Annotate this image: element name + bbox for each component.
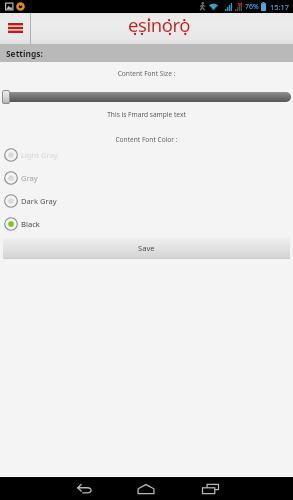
staticText: This is Fmard sample text [0,110,293,119]
staticText: esinoro [128,12,191,37]
staticText: Black [21,219,40,229]
button[interactable]: Dark Gray [0,189,293,212]
staticText: 76% [245,2,259,12]
staticText: 15:17 [270,2,289,12]
button[interactable]: Content font size slider [0,87,293,103]
staticText: Content Font Color : [0,135,293,144]
button[interactable]: Black [0,212,293,235]
button[interactable]: Home [124,477,168,500]
staticText: Dark Gray [21,196,57,206]
button[interactable]: Back [62,477,106,500]
button[interactable]: Gray [0,166,293,189]
button[interactable]: Light Gray [0,143,293,166]
staticText: Content Font Size : [0,69,293,78]
staticText: Settings: [6,48,43,59]
staticText: Light Gray [21,150,58,160]
staticText: Save [138,243,155,253]
button[interactable]: Recent apps [188,477,232,500]
staticText: Gray [21,173,38,183]
button[interactable]: Save [3,238,290,259]
button[interactable]: Open navigation menu [0,13,30,44]
